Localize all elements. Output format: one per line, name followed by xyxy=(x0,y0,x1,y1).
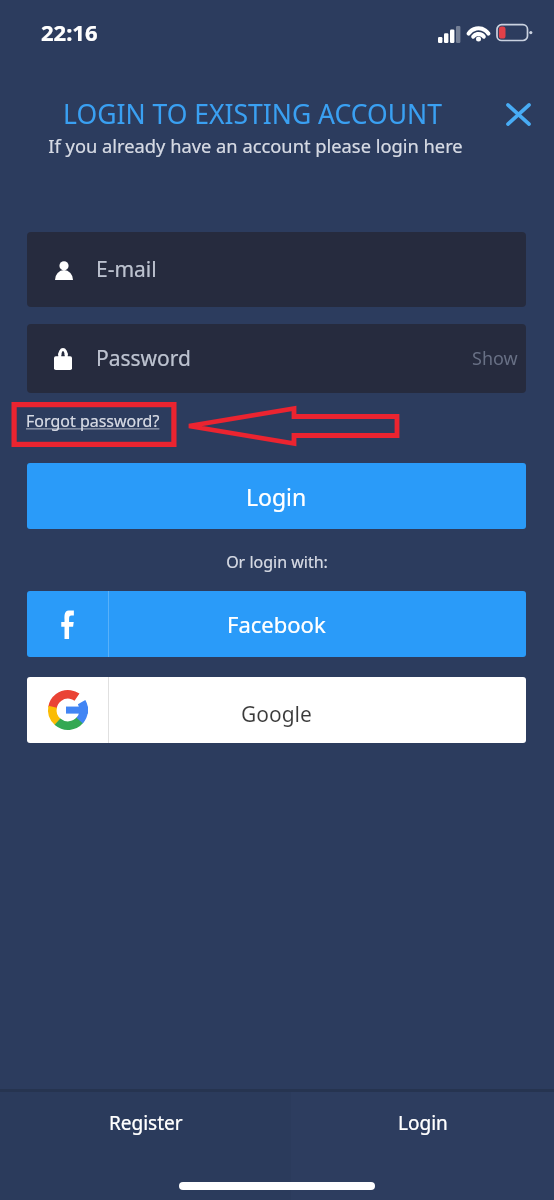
button[interactable]: Facebook xyxy=(27,591,526,657)
button[interactable]: E-mail xyxy=(27,232,526,307)
staticText: 22:16 xyxy=(41,17,98,47)
button[interactable]: Show xyxy=(464,324,526,393)
button[interactable]: Login xyxy=(27,463,526,529)
staticText: Facebook xyxy=(227,609,326,639)
button[interactable]: Close xyxy=(494,90,542,138)
button[interactable]: Forgot password? xyxy=(26,410,160,432)
button[interactable]: Password xyxy=(27,324,526,393)
staticText: Login xyxy=(246,481,307,512)
staticText: Or login with: xyxy=(226,551,328,573)
staticText: E-mail xyxy=(96,255,157,284)
button[interactable]: Login xyxy=(291,1092,554,1200)
staticText: Google xyxy=(241,700,312,729)
staticText: Password xyxy=(96,344,191,373)
staticText: If you already have an account please lo… xyxy=(15,133,496,158)
button[interactable]: Register xyxy=(0,1092,291,1200)
staticText: Show xyxy=(472,346,518,371)
staticText: Register xyxy=(109,1110,183,1136)
staticText: LOGIN TO EXISTING ACCOUNT xyxy=(12,96,493,132)
button[interactable]: Google xyxy=(27,677,526,743)
staticText: Login xyxy=(398,1110,448,1136)
staticText: Forgot password? xyxy=(26,410,160,432)
